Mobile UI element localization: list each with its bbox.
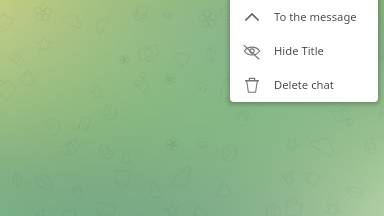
staticText: Hide Title: [274, 43, 324, 58]
button[interactable]: To the message: [230, 0, 378, 34]
other: Hide Title: [243, 42, 261, 60]
other: To the message: [243, 8, 261, 26]
staticText: To the message: [274, 9, 357, 24]
button[interactable]: Delete chat: [230, 68, 378, 102]
other: Delete chat: [243, 76, 261, 94]
button[interactable]: Hide Title: [230, 34, 378, 68]
staticText: Delete chat: [274, 77, 334, 92]
